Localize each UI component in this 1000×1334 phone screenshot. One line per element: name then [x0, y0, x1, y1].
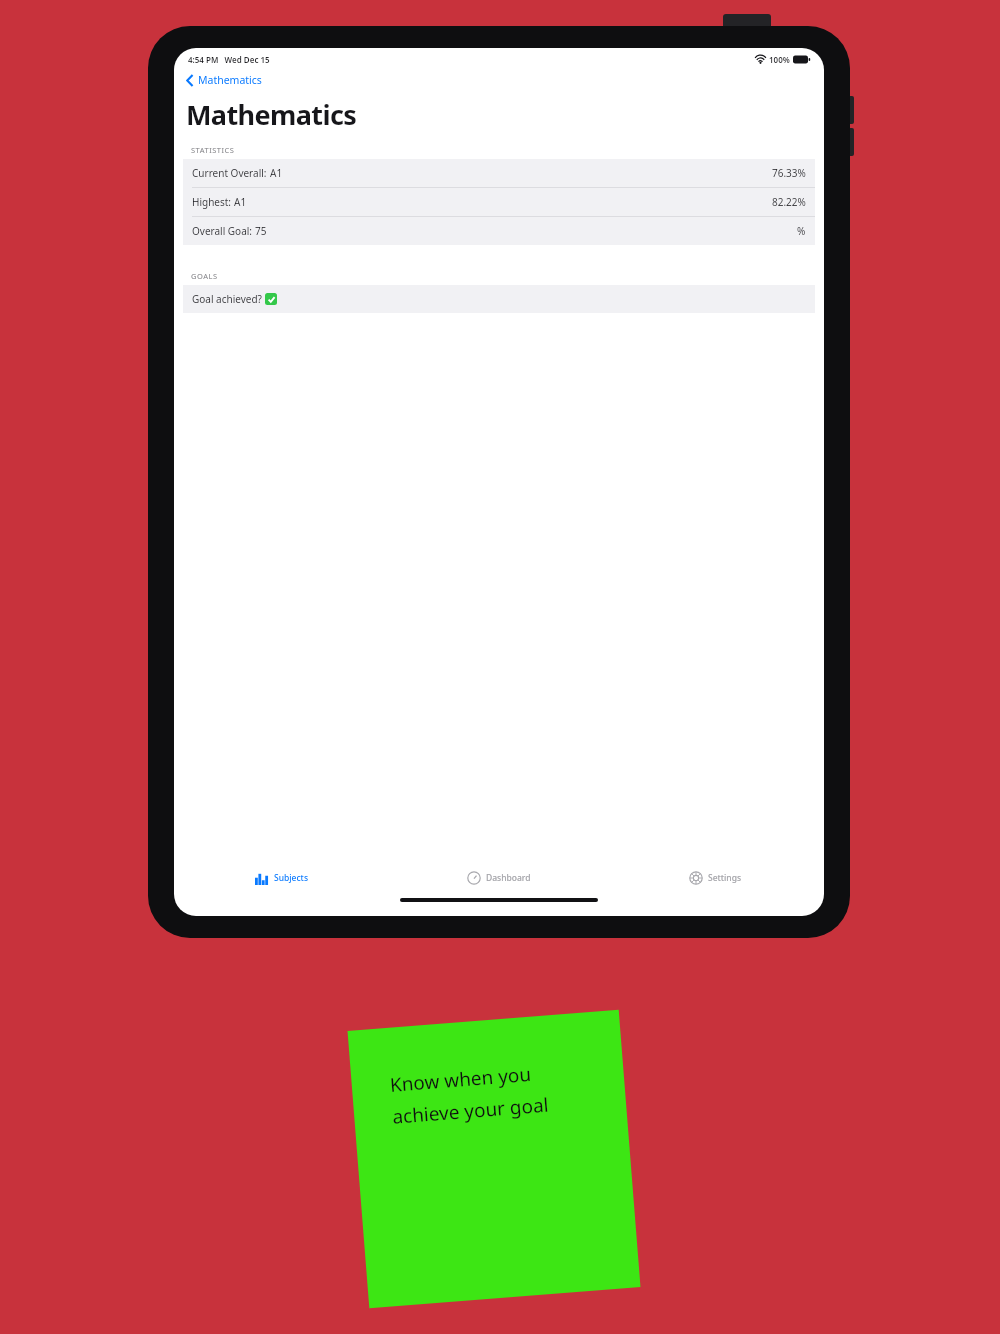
staticText: %	[797, 224, 806, 238]
staticText: STATISTICS	[191, 145, 235, 155]
staticText: Dashboard	[486, 872, 531, 884]
button[interactable]: Dashboard	[390, 858, 607, 898]
staticText: Current Overall:	[192, 166, 270, 180]
button[interactable]: Settings	[607, 858, 824, 898]
staticText: 75	[255, 224, 267, 238]
staticText: A1	[270, 166, 283, 180]
staticText: A1	[234, 195, 247, 209]
button[interactable]: Overall Goal:	[183, 217, 815, 245]
staticText: Highest:	[192, 195, 234, 209]
staticText: 100%	[769, 54, 790, 65]
button[interactable]: Current Overall:	[183, 159, 815, 187]
staticText: 82.22%	[772, 195, 806, 209]
staticText: Goal achieved?	[192, 292, 265, 306]
staticText: GOALS	[191, 271, 218, 281]
staticText: Know when you	[389, 1061, 532, 1098]
button[interactable]: Goal achieved?	[183, 285, 815, 313]
button[interactable]: Highest:	[183, 188, 815, 216]
staticText: Subjects	[274, 872, 309, 884]
staticText: achieve your goal	[391, 1092, 550, 1130]
staticText: Mathematics	[186, 96, 357, 133]
button[interactable]: Subjects	[174, 858, 390, 898]
staticText: Mathematics	[198, 73, 262, 87]
staticText: 76.33%	[772, 166, 806, 180]
staticText: 4:54 PM Wed Dec 15	[188, 54, 270, 65]
staticText: Settings	[708, 872, 742, 884]
staticText: Overall Goal:	[192, 224, 255, 238]
button[interactable]: Mathematics	[182, 70, 266, 90]
